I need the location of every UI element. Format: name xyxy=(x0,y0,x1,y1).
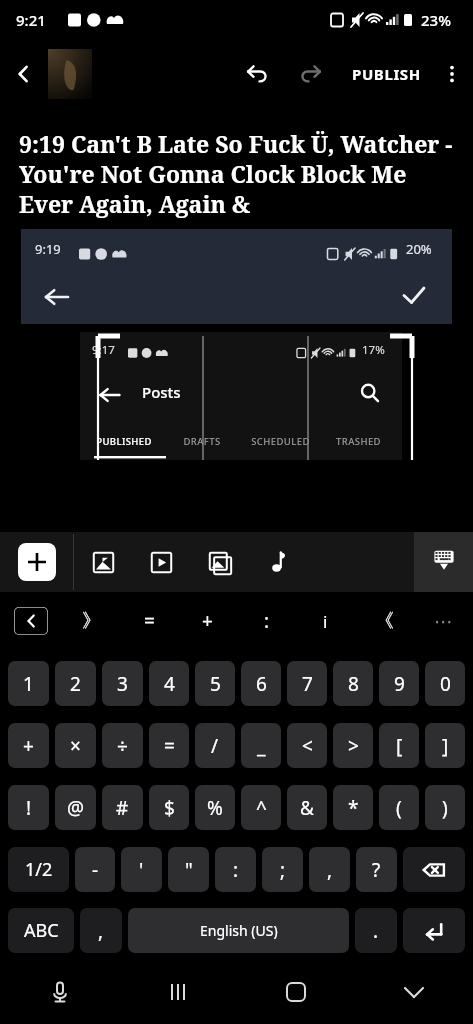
button[interactable]: [ xyxy=(379,723,419,768)
button[interactable]: Recents xyxy=(119,960,237,1024)
staticText: ! xyxy=(26,795,32,821)
staticText: 《 xyxy=(375,609,394,633)
button[interactable]: + xyxy=(8,723,49,768)
staticText: < xyxy=(302,733,313,759)
staticText: 5 xyxy=(210,671,221,697)
staticText: 1 xyxy=(23,671,34,697)
staticText: [ xyxy=(396,733,403,759)
button[interactable]: - xyxy=(75,847,115,892)
button[interactable]: , xyxy=(309,847,350,892)
staticText: 》 xyxy=(82,609,101,633)
button[interactable]: ' xyxy=(121,847,162,892)
button[interactable]: = xyxy=(120,592,178,650)
button[interactable]: Featured image xyxy=(48,49,92,99)
button[interactable]: ÷ xyxy=(102,723,143,768)
button[interactable]: 0 xyxy=(425,661,465,706)
staticText: : xyxy=(264,608,270,634)
button[interactable]: Insert gallery xyxy=(190,532,248,592)
button[interactable]: ( xyxy=(379,785,419,830)
staticText: ] xyxy=(442,733,449,759)
button[interactable]: & xyxy=(287,785,327,830)
button[interactable]: ! xyxy=(8,785,49,830)
button[interactable]: . xyxy=(355,908,397,953)
button[interactable]: 7 xyxy=(287,661,327,706)
button[interactable]: 4 xyxy=(149,661,189,706)
button[interactable]: 8 xyxy=(333,661,373,706)
button[interactable]: Previous xyxy=(0,592,62,650)
button[interactable]: # xyxy=(102,785,143,830)
button[interactable]: Hide keyboard xyxy=(414,532,473,592)
button[interactable]: / xyxy=(195,723,235,768)
button[interactable]: Redo xyxy=(284,48,336,100)
button[interactable]: Backspace xyxy=(403,847,465,892)
staticText: × xyxy=(70,733,81,759)
button[interactable]: 9 xyxy=(379,661,419,706)
button[interactable]: × xyxy=(55,723,96,768)
staticText: $ xyxy=(164,795,175,821)
button[interactable]: Insert audio xyxy=(248,532,306,592)
button[interactable]: ; xyxy=(262,847,303,892)
button[interactable]: Screenshot image block xyxy=(21,229,452,324)
button[interactable]: Insert image xyxy=(74,532,132,592)
staticText: ⋯ xyxy=(434,610,453,632)
button[interactable]: 2 xyxy=(55,661,96,706)
button[interactable]: @ xyxy=(55,785,96,830)
button[interactable]: ] xyxy=(425,723,465,768)
button[interactable]: < xyxy=(287,723,327,768)
button[interactable]: Undo xyxy=(232,48,284,100)
button[interactable]: Voice input xyxy=(0,960,119,1024)
staticText: Posts xyxy=(142,382,181,402)
button[interactable]: 1 xyxy=(8,661,49,706)
button[interactable]: ) xyxy=(425,785,465,830)
button[interactable]: PUBLISH xyxy=(342,46,431,102)
button[interactable]: > xyxy=(333,723,373,768)
button[interactable]: 3 xyxy=(102,661,143,706)
button[interactable]: 6 xyxy=(241,661,281,706)
button[interactable]: English (US) xyxy=(128,908,349,953)
button[interactable]: Add block xyxy=(18,543,56,581)
button[interactable]: * xyxy=(333,785,373,830)
staticText: TRASHED xyxy=(336,435,381,448)
button[interactable]: , xyxy=(80,908,122,953)
staticText: English (US) xyxy=(200,921,278,940)
button[interactable]: ABC xyxy=(8,908,74,953)
button[interactable]: ^ xyxy=(241,785,281,830)
button[interactable]: 1/2 xyxy=(8,847,69,892)
button[interactable]: : xyxy=(237,592,296,650)
staticText: + xyxy=(23,733,34,759)
button[interactable]: " xyxy=(168,847,209,892)
button[interactable]: + xyxy=(178,592,237,650)
button[interactable]: _ xyxy=(241,723,281,768)
button[interactable]: 5 xyxy=(195,661,235,706)
button[interactable]: Selected media block xyxy=(80,332,402,460)
button[interactable]: Insert video xyxy=(132,532,190,592)
staticText: 6 xyxy=(256,671,267,697)
staticText: 2 xyxy=(70,671,81,697)
staticText: . xyxy=(373,918,379,944)
button[interactable]: i xyxy=(296,592,355,650)
button[interactable]: More options xyxy=(431,53,473,95)
button[interactable]: % xyxy=(195,785,235,830)
button[interactable]: : xyxy=(215,847,256,892)
button[interactable]: Home xyxy=(237,960,355,1024)
staticText: ; xyxy=(280,857,286,883)
staticText: = xyxy=(164,733,175,759)
button[interactable]: Hide keyboard xyxy=(355,960,473,1024)
button[interactable]: Enter xyxy=(403,908,465,953)
button[interactable]: ⋯ xyxy=(414,592,473,650)
button[interactable]: ? xyxy=(356,847,397,892)
button[interactable]: = xyxy=(149,723,189,768)
staticText: i xyxy=(323,610,328,633)
button[interactable]: 》 xyxy=(62,592,120,650)
button[interactable]: $ xyxy=(149,785,189,830)
button[interactable]: 《 xyxy=(355,592,414,650)
staticText: ABC xyxy=(24,918,59,943)
staticText: 23% xyxy=(421,10,451,30)
staticText: " xyxy=(185,857,193,883)
staticText: 9:19 xyxy=(35,240,61,258)
staticText: % xyxy=(207,795,223,821)
staticText: DRAFTS xyxy=(183,435,221,448)
staticText: * xyxy=(348,795,359,821)
staticText: 4 xyxy=(164,671,175,697)
button[interactable]: Back xyxy=(0,51,46,97)
